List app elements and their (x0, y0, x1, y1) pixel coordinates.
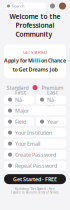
staticText: Repeat Password (15, 162, 57, 169)
staticText: Welcome to the (9, 12, 60, 21)
staticText: By clicking 'Get Started - Free' (15, 187, 55, 191)
staticText: Field (15, 118, 26, 125)
staticText: to Get Dreams Job (12, 66, 57, 73)
staticText: I agree to Aurum's Terms of Service (11, 191, 59, 194)
staticText: Standard (6, 84, 28, 91)
staticText: Professional Community (15, 21, 54, 39)
staticText: Apply for Million Chance (4, 57, 66, 64)
staticText: Your Email (15, 140, 40, 147)
staticText: Last Name (47, 89, 58, 110)
staticText: Major (15, 107, 29, 114)
staticText: First Name (15, 89, 26, 110)
staticText: Search (12, 3, 24, 9)
staticText: Your Institution (15, 129, 52, 136)
staticText: Premium (41, 84, 63, 91)
button[interactable]: Get Started - FREE (4, 174, 66, 184)
staticText: GET STARTED (23, 50, 47, 55)
staticText: Create Password (15, 151, 56, 158)
staticText: Get Started - FREE (13, 176, 57, 183)
staticText: Year (47, 118, 58, 125)
